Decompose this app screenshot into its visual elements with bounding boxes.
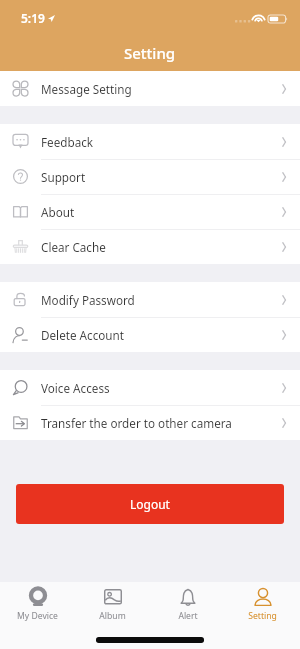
button[interactable]: My Device	[0, 588, 75, 622]
button[interactable]: Transfer the order to other camera	[0, 405, 300, 440]
staticText: Transfer the order to other camera	[41, 415, 232, 431]
staticText: Clear Cache	[41, 239, 106, 255]
staticText: Setting	[124, 43, 176, 63]
staticText: Modify Password	[41, 292, 135, 308]
staticText: Album	[99, 610, 126, 622]
staticText: Logout	[130, 496, 170, 512]
staticText: Message Setting	[41, 81, 132, 97]
button[interactable]: Album	[75, 588, 150, 622]
button[interactable]: Voice Access	[0, 370, 300, 405]
button[interactable]: Feedback	[0, 124, 300, 159]
button[interactable]: Modify Password	[0, 282, 300, 317]
button[interactable]: About	[0, 194, 300, 229]
staticText: Voice Access	[41, 380, 110, 396]
button[interactable]: Setting	[225, 588, 300, 622]
staticText: Feedback	[41, 134, 94, 150]
button[interactable]: Logout	[16, 484, 284, 524]
staticText: About	[41, 204, 75, 220]
button[interactable]: Delete Account	[0, 317, 300, 352]
staticText: 5:19	[21, 10, 45, 26]
staticText: Alert	[178, 610, 198, 622]
staticText: Support	[41, 169, 86, 185]
button[interactable]: Support	[0, 159, 300, 194]
button[interactable]: Alert	[150, 588, 225, 622]
staticText: Delete Account	[41, 327, 125, 343]
button[interactable]: Message Setting	[0, 71, 300, 106]
button[interactable]: Clear Cache	[0, 229, 300, 264]
staticText: Setting	[248, 610, 277, 622]
staticText: My Device	[17, 610, 58, 622]
